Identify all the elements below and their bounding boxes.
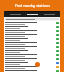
staticText: Find nearby stations [15,3,50,8]
button[interactable] [4,61,60,65]
button[interactable] [4,65,60,69]
button[interactable] [4,69,60,72]
button[interactable]: Add station [35,62,40,67]
button[interactable] [4,21,60,25]
button[interactable] [4,57,60,61]
button[interactable] [4,25,60,29]
button[interactable] [4,33,60,37]
button[interactable]: Search [5,18,59,20]
button[interactable] [41,12,58,17]
button[interactable]: Find nearby stations [0,0,64,11]
button[interactable] [6,12,24,17]
button[interactable] [4,37,60,41]
button[interactable] [24,12,41,17]
button[interactable] [4,49,60,53]
button[interactable] [4,29,60,33]
button[interactable] [4,45,60,49]
button[interactable] [4,41,60,45]
button[interactable] [4,53,60,57]
